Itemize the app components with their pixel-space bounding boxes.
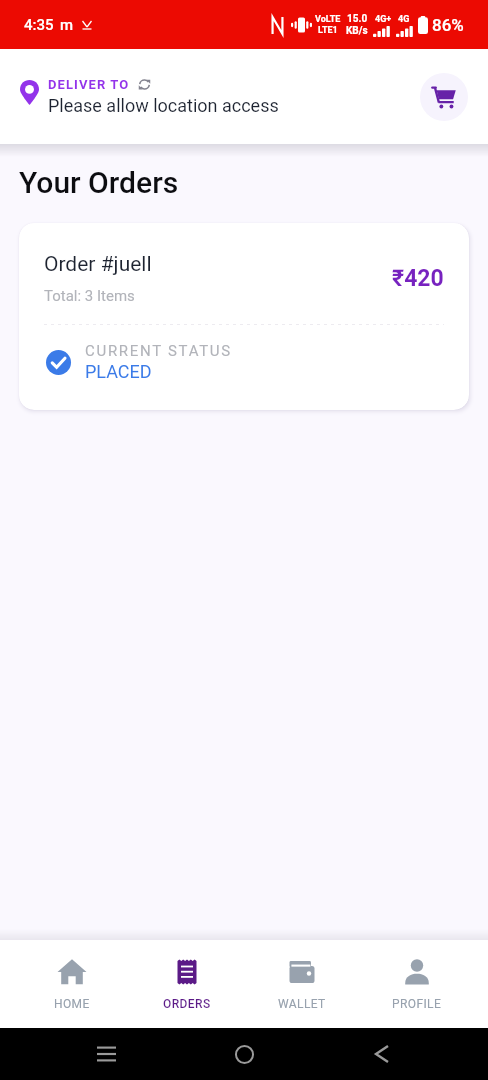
staticText: Order #juell [44,252,152,277]
staticText: KB/s [346,25,368,37]
staticText: Total: 3 Items [44,287,135,305]
staticText: CURRENT STATUS [85,342,232,360]
staticText: HOME [54,997,90,1011]
button[interactable]: PROFILE [359,940,474,1028]
button[interactable]: ORDERS [129,940,244,1028]
button[interactable]: Cart [420,73,468,121]
staticText: VoLTE [315,14,341,25]
button[interactable]: Back [313,1028,451,1080]
button[interactable]: HOME [14,940,129,1028]
staticText: Your Orders [19,165,179,200]
staticText: 4G+ [375,14,392,25]
staticText: ORDERS [163,997,211,1011]
staticText: 15.0 [347,13,368,25]
staticText: 86% [432,15,464,35]
staticText: DELIVER TO [48,77,130,92]
staticText: 4G [398,14,410,25]
staticText: 4:35 [24,16,54,34]
button[interactable]: Home [175,1028,313,1080]
staticText: ₹420 [392,265,444,292]
staticText: PLACED [85,361,152,382]
button[interactable]: WALLET [244,940,359,1028]
staticText: Please allow location access [48,95,279,116]
staticText: WALLET [278,997,326,1011]
staticText: PROFILE [392,997,442,1011]
button[interactable]: Order #juell [19,223,469,410]
staticText: LTE1 [318,25,338,36]
staticText: m [60,16,74,34]
button[interactable]: Recent apps [37,1028,175,1080]
